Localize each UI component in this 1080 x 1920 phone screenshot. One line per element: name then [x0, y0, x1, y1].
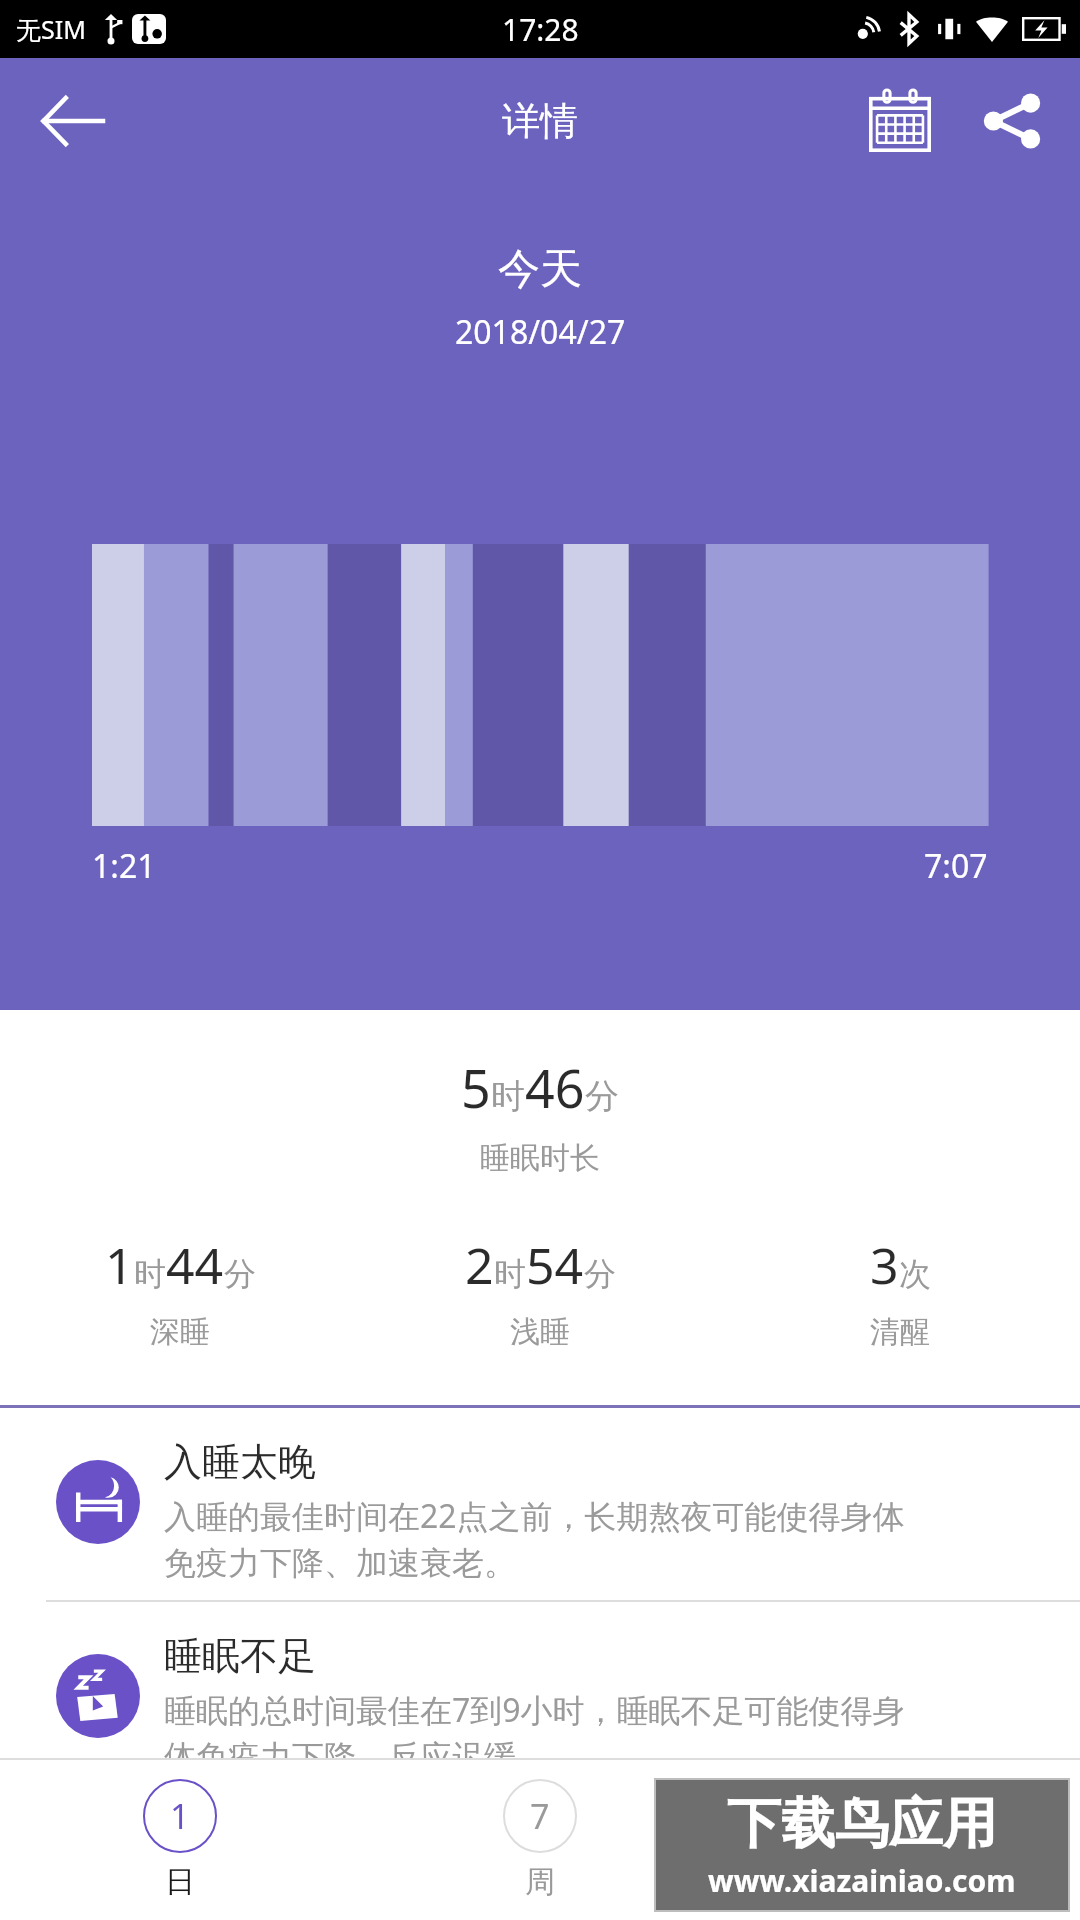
button[interactable]: Back: [30, 79, 114, 163]
staticText: 今天: [498, 243, 582, 296]
staticText: 分: [584, 1254, 616, 1294]
staticText: 1: [105, 1231, 134, 1299]
staticText: 7:07: [924, 844, 988, 888]
staticText: 入睡的最佳时间在22点之前，长期熬夜可能使得身体 免疫力下降、加速衰老。: [164, 1494, 905, 1584]
staticText: 分: [224, 1254, 256, 1294]
staticText: 睡眠的总时间最佳在7到9小时，睡眠不足可能使得身 体免疫力下降、反应迟缓。: [164, 1688, 905, 1778]
staticText: 时: [491, 1075, 525, 1118]
staticText: 5: [461, 1052, 491, 1123]
button[interactable]: Share: [970, 79, 1054, 163]
staticText: 时: [494, 1254, 526, 1294]
staticText: 睡眠时长: [480, 1139, 600, 1177]
staticText: 46: [525, 1052, 585, 1123]
staticText: 睡眠不足: [164, 1632, 316, 1680]
staticText: 浅睡: [510, 1313, 570, 1351]
staticText: 1:21: [92, 844, 156, 888]
staticText: 次: [899, 1254, 931, 1294]
staticText: 深睡: [150, 1313, 210, 1351]
button[interactable]: 7: [360, 1771, 720, 1909]
staticText: 1: [170, 1793, 190, 1839]
staticText: 入睡太晚: [164, 1438, 316, 1486]
button[interactable]: 睡眠不足: [0, 1628, 1080, 1778]
staticText: 54: [526, 1231, 584, 1299]
staticText: 3: [870, 1231, 899, 1299]
staticText: www.xiazainiao.com: [708, 1860, 1016, 1901]
staticText: 44: [166, 1231, 224, 1299]
staticText: 下载鸟应用: [727, 1790, 997, 1858]
staticText: 7: [530, 1793, 550, 1839]
button[interactable]: 1: [0, 1771, 360, 1909]
staticText: 2: [465, 1231, 494, 1299]
button[interactable]: 入睡太晚: [0, 1434, 1080, 1584]
staticText: 详情: [502, 97, 578, 145]
staticText: 时: [134, 1254, 166, 1294]
staticText: 清醒: [870, 1313, 930, 1351]
staticText: 17:28: [502, 9, 579, 50]
staticText: 分: [585, 1075, 619, 1118]
button[interactable]: Calendar: [858, 79, 942, 163]
staticText: 无SIM: [16, 12, 86, 46]
staticText: 2018/04/27: [455, 310, 626, 354]
staticText: 日: [165, 1863, 195, 1901]
staticText: 周: [525, 1863, 555, 1901]
